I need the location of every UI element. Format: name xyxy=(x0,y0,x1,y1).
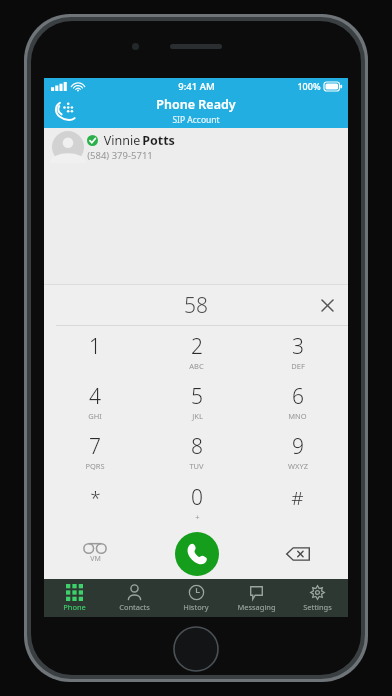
button[interactable]: 2 xyxy=(146,326,247,376)
staticText: Potts xyxy=(142,132,175,149)
staticText: MNO xyxy=(288,411,307,421)
staticText: # xyxy=(291,485,304,511)
button[interactable]: Messaging xyxy=(226,579,287,617)
button[interactable]: 5 xyxy=(146,376,247,426)
button[interactable]: Dialer logo xyxy=(49,96,79,126)
staticText: Phone xyxy=(63,602,86,612)
button[interactable]: 1 xyxy=(44,326,146,376)
button[interactable]: Backspace xyxy=(247,528,348,579)
button[interactable]: Clear number xyxy=(314,292,340,318)
staticText: 1 xyxy=(89,332,101,361)
staticText: (584) 379-5711 xyxy=(87,149,153,162)
button[interactable]: # xyxy=(247,477,348,528)
button[interactable]: 7 xyxy=(44,426,146,477)
button[interactable]: 0 xyxy=(146,477,247,528)
button[interactable]: Vinnie xyxy=(44,128,348,166)
staticText: GHI xyxy=(88,411,102,421)
staticText: * xyxy=(90,485,101,511)
staticText: WXYZ xyxy=(288,461,308,471)
staticText: 9:41 AM xyxy=(178,80,215,93)
staticText: JKL xyxy=(192,411,203,421)
staticText: 9 xyxy=(292,432,304,461)
button[interactable]: 3 xyxy=(247,326,348,376)
button[interactable]: Call xyxy=(175,532,219,576)
staticText: SIP Account xyxy=(172,114,220,126)
staticText: 3 xyxy=(292,332,304,361)
button[interactable]: * xyxy=(44,477,146,528)
button[interactable]: Contacts xyxy=(104,579,165,617)
button[interactable]: Settings xyxy=(287,579,348,617)
button[interactable]: Phone xyxy=(44,579,104,617)
button[interactable]: 4 xyxy=(44,376,146,426)
button[interactable]: 8 xyxy=(146,426,247,477)
staticText: VM xyxy=(90,554,101,564)
staticText: 4 xyxy=(89,382,101,411)
button[interactable]: Voicemail xyxy=(44,528,146,579)
staticText: Settings xyxy=(303,602,332,612)
staticText: 2 xyxy=(191,332,203,361)
staticText: 58 xyxy=(184,291,208,320)
button[interactable]: 9 xyxy=(247,426,348,477)
staticText: DEF xyxy=(291,361,305,371)
staticText: 5 xyxy=(191,382,203,411)
staticText: 6 xyxy=(292,382,304,411)
staticText: Vinnie xyxy=(102,132,142,149)
staticText: Messaging xyxy=(237,602,276,612)
staticText: + xyxy=(195,512,200,522)
staticText: 7 xyxy=(89,432,101,461)
staticText: ABC xyxy=(189,361,204,371)
staticText: TUV xyxy=(189,461,204,471)
staticText: 100% xyxy=(297,80,321,92)
staticText: History xyxy=(183,602,209,612)
staticText: Phone Ready xyxy=(156,96,236,113)
staticText: PQRS xyxy=(85,461,105,471)
staticText: Contacts xyxy=(119,602,150,612)
button[interactable]: History xyxy=(165,579,226,617)
button[interactable]: 6 xyxy=(247,376,348,426)
staticText: 0 xyxy=(191,483,203,512)
staticText: 8 xyxy=(191,432,203,461)
